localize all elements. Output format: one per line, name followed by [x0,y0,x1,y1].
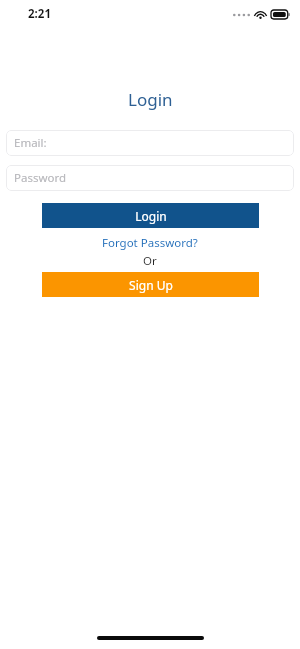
button[interactable]: Sign Up [42,272,259,297]
staticText: Email: [14,135,47,151]
staticText: Password [14,170,67,186]
staticText: Or [143,253,157,269]
button[interactable]: Forgot Password? [98,234,202,252]
staticText: Login [135,208,167,224]
staticText: Sign Up [129,277,173,293]
button[interactable]: Login [42,203,259,228]
button[interactable]: Password [6,165,294,191]
staticText: Forgot Password? [102,235,198,251]
staticText: 2:21 [28,6,51,22]
staticText: Login [128,88,173,111]
button[interactable]: Email: [6,130,294,156]
